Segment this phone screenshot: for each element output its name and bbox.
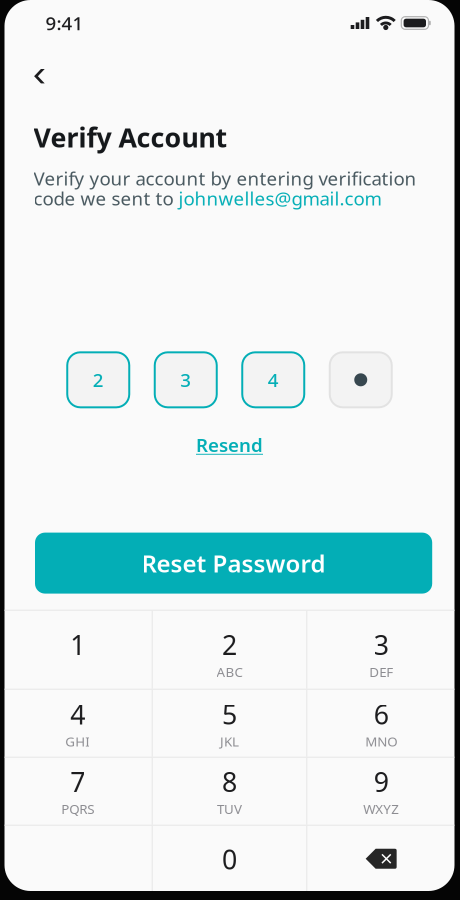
staticText: 0 bbox=[222, 841, 237, 877]
staticText: 7 bbox=[70, 764, 85, 799]
button[interactable]: Code digit 2 bbox=[67, 352, 129, 407]
staticText: 1 bbox=[70, 627, 85, 662]
staticText: 8 bbox=[222, 764, 237, 799]
staticText: Verify Account bbox=[33, 119, 227, 155]
staticText: TUV bbox=[217, 800, 242, 818]
button[interactable]: Reset Password bbox=[35, 533, 432, 594]
staticText: 2 bbox=[222, 627, 237, 662]
staticText: johnwelles@gmail.com bbox=[178, 186, 381, 211]
button[interactable]: 9 bbox=[307, 758, 455, 825]
staticText: ABC bbox=[216, 663, 242, 681]
staticText: 9:41 bbox=[45, 11, 83, 35]
staticText: code we sent to bbox=[33, 186, 178, 211]
staticText: Resend bbox=[196, 432, 263, 457]
button[interactable]: Code digit 3 bbox=[155, 352, 217, 407]
button[interactable]: Code digit entered bbox=[330, 352, 392, 407]
staticText: 2 bbox=[93, 367, 104, 392]
button[interactable]: 0 bbox=[153, 826, 306, 892]
staticText: 3 bbox=[374, 627, 389, 662]
button[interactable]: 7 bbox=[4, 758, 152, 825]
staticText: PQRS bbox=[61, 800, 94, 818]
button[interactable]: 4 bbox=[4, 690, 152, 757]
staticText: WXYZ bbox=[363, 800, 399, 818]
staticText: JKL bbox=[220, 732, 239, 750]
staticText: 6 bbox=[374, 696, 389, 732]
button[interactable]: 5 bbox=[153, 690, 306, 757]
button[interactable]: 6 bbox=[307, 690, 455, 757]
staticText: 3 bbox=[180, 367, 191, 392]
staticText: DEF bbox=[369, 663, 393, 681]
button[interactable]: Resend bbox=[186, 429, 273, 460]
staticText: 9 bbox=[374, 764, 389, 799]
staticText: GHI bbox=[65, 732, 90, 750]
button[interactable]: 2 bbox=[153, 611, 306, 689]
button[interactable]: Code digit 4 bbox=[242, 352, 304, 407]
button[interactable]: Back bbox=[20, 56, 59, 96]
staticText: MNO bbox=[365, 732, 397, 750]
staticText: Verify your account by entering verifica… bbox=[33, 166, 416, 191]
button[interactable]: 3 bbox=[307, 611, 455, 689]
staticText: 4 bbox=[268, 367, 279, 392]
button[interactable]: 8 bbox=[153, 758, 306, 825]
staticText: Reset Password bbox=[142, 547, 326, 579]
staticText: 4 bbox=[70, 696, 85, 732]
button[interactable]: 1 bbox=[4, 611, 152, 689]
button[interactable]: Delete bbox=[307, 826, 455, 892]
staticText: 5 bbox=[222, 696, 237, 732]
